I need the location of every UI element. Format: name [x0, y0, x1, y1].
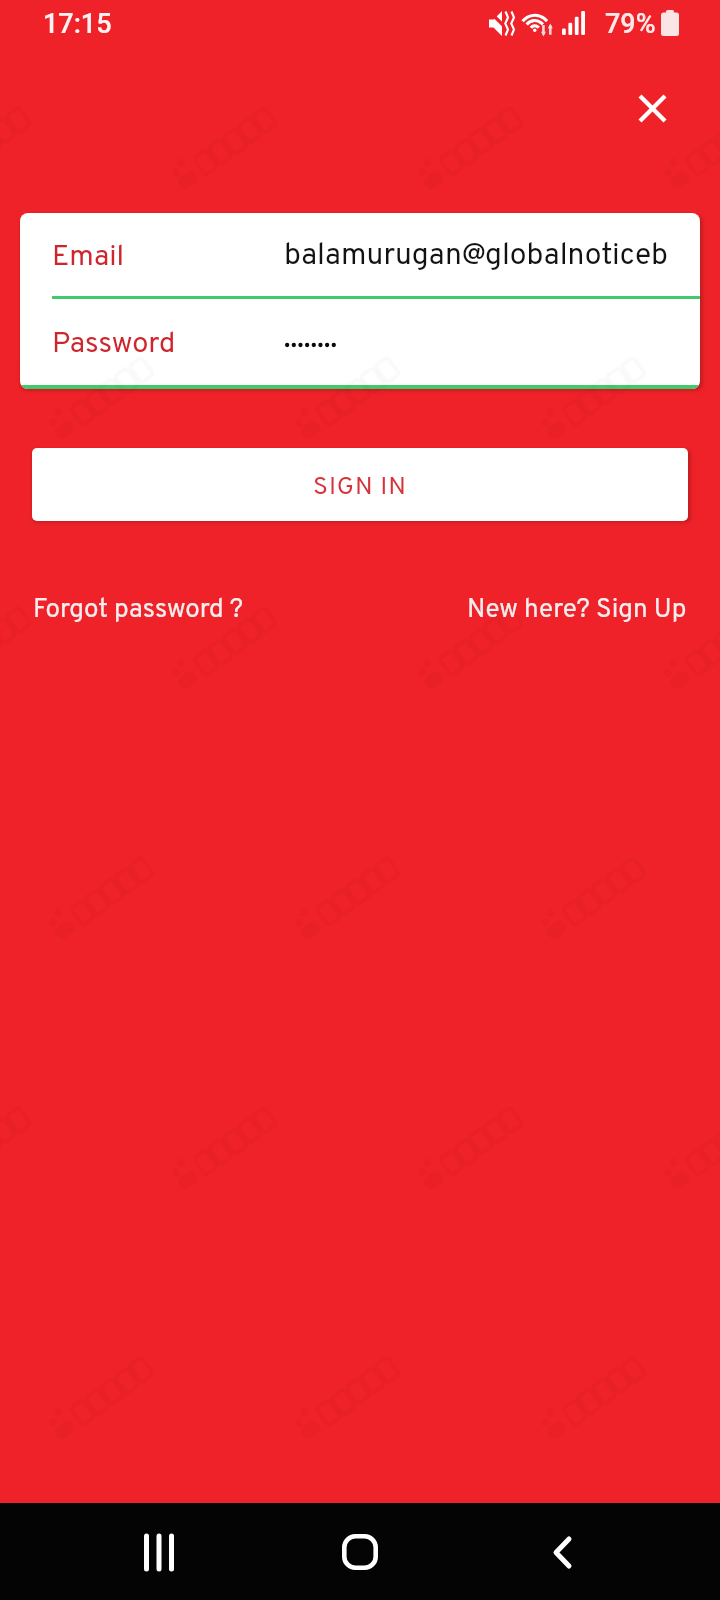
button[interactable]: New here? Sign Up	[456, 588, 698, 633]
staticText: 79%	[605, 8, 656, 40]
staticText: Email	[52, 239, 125, 276]
button[interactable]: SIGN IN	[32, 448, 688, 521]
staticText: 17:15	[43, 8, 112, 40]
staticText: balamurugan@globalnoticeboard.com	[284, 238, 669, 276]
button[interactable]: Email	[20, 213, 700, 296]
button[interactable]: Recent apps	[118, 1511, 200, 1593]
button[interactable]: Password	[20, 299, 700, 385]
staticText: SIGN IN	[313, 472, 407, 504]
staticText: New here? Sign Up	[467, 594, 687, 627]
staticText: Forgot password ?	[33, 594, 244, 627]
button[interactable]: Forgot password ?	[22, 588, 255, 633]
button[interactable]: Home	[319, 1511, 401, 1593]
staticText: Password	[52, 326, 176, 363]
button[interactable]: Back	[521, 1511, 603, 1593]
button[interactable]: Close	[624, 80, 680, 136]
